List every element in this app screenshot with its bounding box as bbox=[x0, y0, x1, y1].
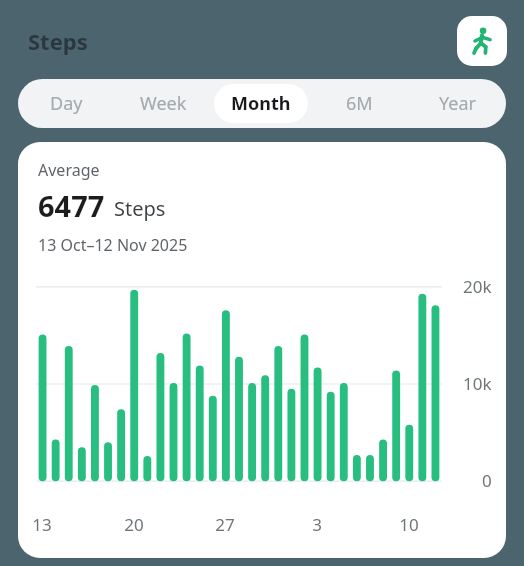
staticText: 3 bbox=[312, 513, 322, 536]
button[interactable]: Average bbox=[18, 142, 506, 558]
staticText: 10 bbox=[399, 513, 419, 536]
button[interactable]: Steps activity type bbox=[457, 16, 507, 66]
staticText: Month bbox=[231, 91, 291, 116]
staticText: 13 Oct–12 Nov 2025 bbox=[38, 234, 188, 256]
staticText: Day bbox=[50, 91, 83, 116]
staticText: 20 bbox=[124, 513, 144, 536]
staticText: Average bbox=[38, 159, 100, 181]
staticText: 6M bbox=[346, 91, 373, 116]
staticText: 6477 bbox=[38, 186, 105, 225]
staticText: 13 bbox=[32, 513, 52, 536]
staticText: 0 bbox=[482, 469, 492, 492]
staticText: Year bbox=[439, 91, 476, 116]
button[interactable]: Day bbox=[20, 84, 113, 123]
button[interactable]: Week bbox=[117, 84, 210, 123]
staticText: 10k bbox=[463, 372, 492, 395]
staticText: 20k bbox=[463, 275, 492, 298]
button[interactable]: Year bbox=[410, 84, 504, 123]
staticText: Steps bbox=[114, 195, 166, 222]
staticText: Steps bbox=[28, 26, 88, 56]
staticText: Week bbox=[140, 91, 187, 116]
staticText: 27 bbox=[215, 513, 235, 536]
button[interactable]: 6M bbox=[312, 84, 406, 123]
button[interactable]: Month bbox=[214, 84, 308, 123]
